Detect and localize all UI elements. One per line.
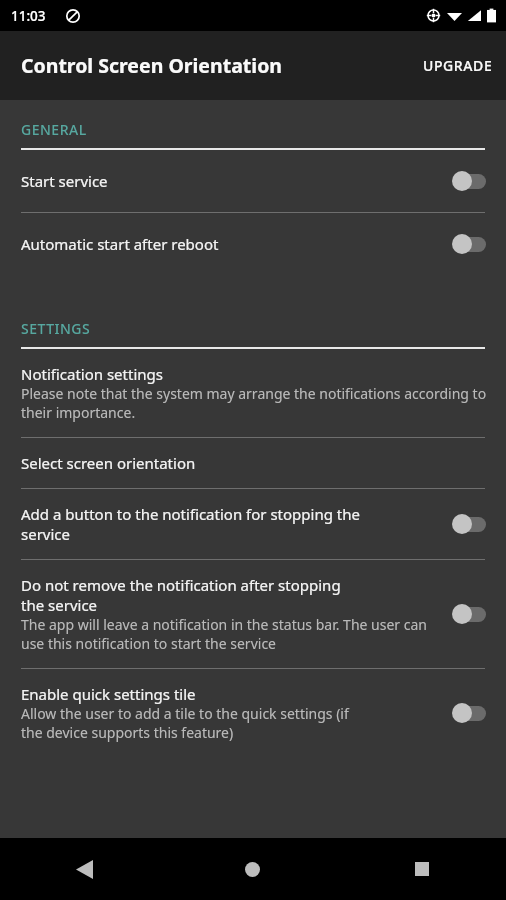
button[interactable]: Home (168, 838, 337, 900)
button[interactable]: Toggle Enable quick settings tile (446, 697, 492, 729)
staticText: Automatic start after reboot (21, 234, 446, 254)
button[interactable]: Toggle Do not remove the notification af… (446, 598, 492, 630)
button[interactable]: Start service (0, 150, 506, 212)
button[interactable]: Recent apps (337, 838, 506, 900)
staticText: Enable quick settings tile (21, 684, 374, 704)
staticText: Start service (21, 171, 446, 191)
button[interactable]: Back (0, 838, 168, 900)
button[interactable]: Toggle Automatic start after reboot (446, 228, 492, 260)
staticText: Notification settings (21, 364, 492, 384)
button[interactable]: Toggle Start service (446, 165, 492, 197)
staticText: UPGRADE (423, 56, 493, 75)
staticText: Allow the user to add a tile to the quic… (21, 704, 374, 742)
staticText: GENERAL (21, 120, 87, 139)
button[interactable]: Automatic start after reboot (0, 213, 506, 275)
button[interactable]: UPGRADE (410, 46, 506, 85)
button[interactable]: Notification settings (0, 349, 506, 437)
button[interactable]: Toggle Add a button to the notification … (446, 508, 492, 540)
staticText: Control Screen Orientation (21, 52, 282, 79)
staticText: Do not remove the notification after sto… (21, 575, 361, 615)
staticText: Add a button to the notification for sto… (21, 504, 361, 544)
staticText: SETTINGS (21, 319, 91, 338)
button[interactable]: Do not remove the notification after sto… (0, 560, 506, 668)
button[interactable]: Add a button to the notification for sto… (0, 489, 506, 559)
button[interactable]: Select screen orientation (0, 438, 506, 488)
staticText: Select screen orientation (21, 453, 492, 473)
staticText: 11:03 (11, 7, 46, 25)
button[interactable]: Enable quick settings tile (0, 669, 506, 757)
staticText: Please note that the system may arrange … (21, 384, 492, 422)
staticText: The app will leave a notification in the… (21, 615, 446, 653)
